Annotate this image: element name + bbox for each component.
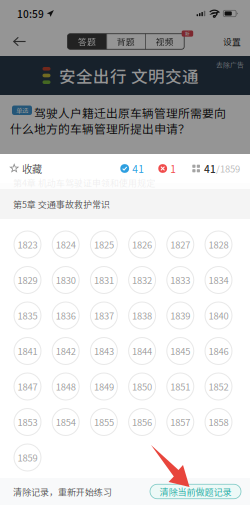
button[interactable]: 1849 <box>90 373 117 400</box>
button[interactable]: 1841 <box>14 337 41 364</box>
button[interactable]: 1827 <box>167 231 194 258</box>
staticText: 设置 <box>223 35 241 48</box>
button[interactable]: 1838 <box>129 302 156 329</box>
staticText: 1 <box>170 161 176 176</box>
staticText: 1834 <box>208 273 228 287</box>
staticText: 1824 <box>56 238 76 251</box>
button[interactable]: 1846 <box>205 337 232 364</box>
staticText: 1839 <box>170 309 190 322</box>
staticText: 第5章 交通事故救护常识 <box>13 197 110 210</box>
button[interactable]: 1855 <box>90 408 117 435</box>
button[interactable]: 视频 <box>145 34 184 49</box>
staticText: 1849 <box>94 380 114 393</box>
staticText: 清除当前做题记录 <box>159 485 231 498</box>
staticText: 41 <box>132 161 144 176</box>
staticText: 1836 <box>56 309 76 322</box>
button[interactable]: 1850 <box>129 373 156 400</box>
button[interactable]: Back <box>13 33 40 49</box>
button[interactable]: 1829 <box>14 266 41 293</box>
button[interactable]: 1847 <box>14 373 41 400</box>
button[interactable]: 1839 <box>167 302 194 329</box>
staticText: 1837 <box>94 309 114 322</box>
staticText: 1826 <box>132 238 152 251</box>
button[interactable]: 1824 <box>52 231 79 258</box>
staticText: 1825 <box>94 238 114 251</box>
button[interactable]: 1859 <box>14 444 41 471</box>
staticText: 1829 <box>17 273 37 287</box>
staticText: 1840 <box>208 309 228 322</box>
staticText: /1859 <box>216 162 240 175</box>
button[interactable]: 1826 <box>129 231 156 258</box>
staticText: 1851 <box>170 380 190 393</box>
staticText: 1832 <box>132 273 152 287</box>
staticText: 1831 <box>94 273 114 287</box>
staticText: 1844 <box>132 344 152 358</box>
staticText: 10:59 <box>17 6 44 21</box>
button[interactable]: 收藏 <box>10 161 42 176</box>
staticText: 1852 <box>208 380 228 393</box>
staticText: 1855 <box>94 415 114 429</box>
staticText: 背题 <box>117 35 135 48</box>
staticText: 清除记录，重新开始练习 <box>13 485 112 498</box>
staticText: 1838 <box>132 309 152 322</box>
staticText: 视频 <box>156 35 174 48</box>
button[interactable]: 设置 <box>223 35 241 48</box>
button[interactable]: 1823 <box>14 231 41 258</box>
staticText: 1842 <box>56 344 76 358</box>
staticText: 去除广告 <box>216 59 244 69</box>
button[interactable]: 1842 <box>52 337 79 364</box>
button[interactable]: 1837 <box>90 302 117 329</box>
staticText: 1843 <box>94 344 114 358</box>
button[interactable]: 1833 <box>167 266 194 293</box>
staticText: 1823 <box>17 238 37 251</box>
button[interactable]: 1857 <box>167 408 194 435</box>
staticText: 1828 <box>208 238 228 251</box>
button[interactable]: 背题 <box>106 34 145 49</box>
staticText: 单选 <box>16 106 28 115</box>
staticText: 1845 <box>170 344 190 358</box>
button[interactable]: 1835 <box>14 302 41 329</box>
button[interactable]: 1854 <box>52 408 79 435</box>
button[interactable]: 41 <box>192 161 240 176</box>
staticText: 1833 <box>170 273 190 287</box>
button[interactable]: 1852 <box>205 373 232 400</box>
staticText: 1835 <box>17 309 37 322</box>
staticText: 1857 <box>170 415 190 429</box>
button[interactable]: 答题 <box>67 34 106 49</box>
button[interactable]: 1848 <box>52 373 79 400</box>
staticText: 1848 <box>56 380 76 393</box>
staticText: 1850 <box>132 380 152 393</box>
staticText: 1859 <box>17 451 37 464</box>
button[interactable]: 1836 <box>52 302 79 329</box>
staticText: 1853 <box>17 415 37 429</box>
button[interactable]: 1844 <box>129 337 156 364</box>
button[interactable]: 1832 <box>129 266 156 293</box>
button[interactable]: 1825 <box>90 231 117 258</box>
button[interactable]: 1851 <box>167 373 194 400</box>
staticText: 1856 <box>132 415 152 429</box>
button[interactable]: 1858 <box>205 408 232 435</box>
staticText: 1830 <box>56 273 76 287</box>
button[interactable]: 1830 <box>52 266 79 293</box>
staticText: 新 <box>185 30 190 37</box>
button[interactable]: 1856 <box>129 408 156 435</box>
button[interactable]: 1831 <box>90 266 117 293</box>
staticText: 41 <box>204 161 216 176</box>
staticText: 驾驶人户籍迁出原车辆管理所需要向什么地方的车辆管理所提出申请？ <box>10 104 226 137</box>
button[interactable]: 1828 <box>205 231 232 258</box>
button[interactable]: 1840 <box>205 302 232 329</box>
staticText: 收藏 <box>22 161 42 176</box>
staticText: 1847 <box>17 380 37 393</box>
staticText: 1827 <box>170 238 190 251</box>
staticText: 第4章 机动车驾驶证申领和使用规定 <box>13 176 155 189</box>
staticText: 安全出行 文明交通 <box>59 63 199 87</box>
staticText: 1854 <box>56 415 76 429</box>
button[interactable]: 1853 <box>14 408 41 435</box>
button[interactable]: 1834 <box>205 266 232 293</box>
button[interactable]: 1845 <box>167 337 194 364</box>
staticText: 1841 <box>17 344 37 358</box>
button[interactable]: 清除当前做题记录 <box>150 484 241 499</box>
button[interactable]: 1843 <box>90 337 117 364</box>
staticText: 1846 <box>208 344 228 358</box>
staticText: 答题 <box>78 35 96 48</box>
